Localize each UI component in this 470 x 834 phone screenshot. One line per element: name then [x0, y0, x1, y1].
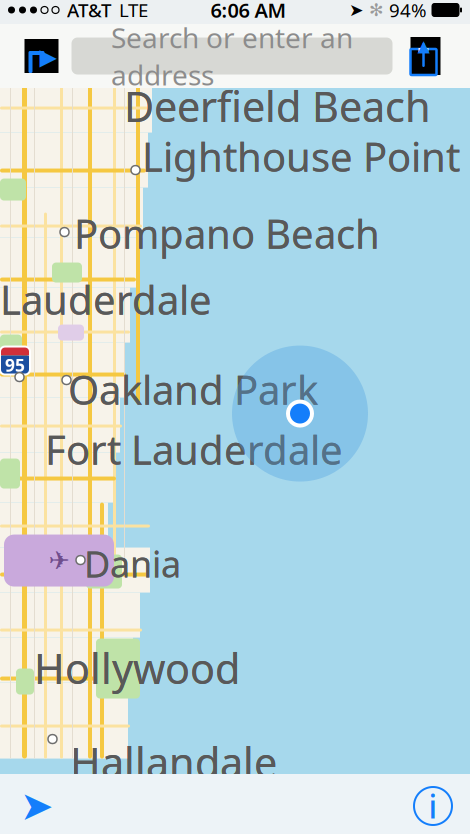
- staticText: ▲: [417, 37, 429, 55]
- button[interactable]: Share: [392, 28, 458, 84]
- staticText: Hollywood: [34, 641, 240, 695]
- staticText: Pompano Beach: [74, 207, 380, 260]
- staticText: ➤: [20, 783, 54, 829]
- staticText: 95: [5, 353, 25, 376]
- staticText: ▶: [39, 44, 56, 70]
- staticText: Hollywood: [34, 641, 240, 695]
- staticText: Lauderdale: [0, 273, 212, 326]
- button[interactable]: Search or enter an address: [71, 37, 392, 74]
- staticText: Dania: [84, 540, 181, 587]
- button[interactable]: Show current location: [0, 778, 74, 834]
- staticText: Pompano Beach: [74, 207, 380, 260]
- staticText: Deerfield Beach: [124, 79, 431, 133]
- button[interactable]: Directions: [11, 28, 71, 84]
- staticText: 6:06 AM: [210, 0, 286, 23]
- staticText: Lighthouse Point: [142, 130, 460, 183]
- button[interactable]: Info: [396, 778, 470, 834]
- staticText: ➤: [20, 783, 54, 829]
- staticText: ➤: [349, 0, 364, 20]
- staticText: Oakland Park: [68, 363, 318, 416]
- staticText: Fort Lauderdale: [45, 423, 343, 476]
- staticText: Oakland Park: [68, 363, 318, 416]
- staticText: Hallandale: [70, 735, 277, 789]
- staticText: i: [428, 785, 437, 827]
- staticText: ✈: [48, 546, 69, 575]
- staticText: 94%: [389, 0, 427, 22]
- staticText: AT&T: [67, 0, 111, 22]
- staticText: Lauderdale: [0, 273, 212, 326]
- staticText: Fort Lauderdale: [45, 423, 343, 476]
- staticText: Search or enter an address: [111, 19, 353, 93]
- staticText: Lighthouse Point: [142, 130, 460, 183]
- staticText: Dania: [84, 540, 181, 587]
- staticText: ✻: [369, 0, 384, 20]
- staticText: Hallandale: [70, 735, 277, 789]
- staticText: LTE: [119, 0, 148, 22]
- staticText: Deerfield Beach: [124, 79, 431, 133]
